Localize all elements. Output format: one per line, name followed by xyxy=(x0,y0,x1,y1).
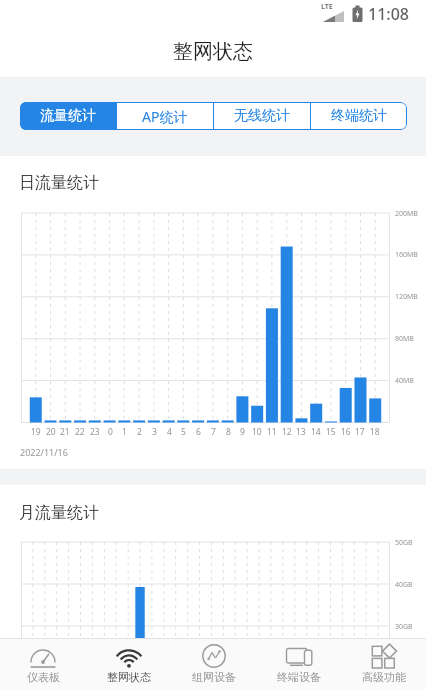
staticText: 50GB xyxy=(395,538,413,548)
staticText: 整网状态 xyxy=(107,670,151,684)
button[interactable]: 终端统计 xyxy=(311,102,407,130)
staticText: 9 xyxy=(240,426,245,438)
staticText: 11 xyxy=(267,426,277,438)
staticText: 40MB xyxy=(395,376,414,386)
staticText: 23 xyxy=(90,426,100,438)
staticText: 8 xyxy=(226,426,231,438)
staticText: 22 xyxy=(75,426,85,438)
staticText: 18 xyxy=(370,426,380,438)
staticText: AP统计 xyxy=(142,107,188,126)
staticText: 终端统计 xyxy=(331,107,387,125)
staticText: 19 xyxy=(31,426,41,438)
staticText: 16 xyxy=(341,426,351,438)
staticText: 高级功能 xyxy=(362,670,406,684)
button[interactable]: 终端设备 xyxy=(256,639,341,690)
staticText: 17 xyxy=(355,426,365,438)
staticText: 11:08 xyxy=(368,3,409,25)
staticText: 21 xyxy=(60,426,70,438)
staticText: 4 xyxy=(167,426,172,438)
staticText: 3 xyxy=(152,426,157,438)
staticText: 120MB xyxy=(395,292,418,302)
staticText: 月流量统计 xyxy=(19,503,99,523)
staticText: 12 xyxy=(282,426,292,438)
staticText: 14 xyxy=(311,426,321,438)
staticText: 1 xyxy=(122,426,127,438)
staticText: 2022/11/16 xyxy=(20,446,68,458)
staticText: 整网状态 xyxy=(173,39,253,64)
staticText: 6 xyxy=(196,426,201,438)
staticText: 7 xyxy=(211,426,216,438)
button[interactable]: 组网设备 xyxy=(171,639,256,690)
staticText: 160MB xyxy=(395,250,418,260)
staticText: 5 xyxy=(181,426,186,438)
staticText: 0 xyxy=(108,426,113,438)
button[interactable]: 流量统计 xyxy=(20,102,116,130)
staticText: 15 xyxy=(326,426,336,438)
staticText: 日流量统计 xyxy=(19,173,99,193)
staticText: 10 xyxy=(252,426,262,438)
button[interactable]: 整网状态 xyxy=(86,639,171,690)
staticText: 流量统计 xyxy=(40,107,96,125)
staticText: 仪表板 xyxy=(27,670,60,684)
staticText: 13 xyxy=(296,426,306,438)
staticText: 80MB xyxy=(395,334,414,344)
staticText: LTE xyxy=(321,2,333,12)
staticText: 20 xyxy=(46,426,56,438)
staticText: 组网设备 xyxy=(192,670,236,684)
staticText: 40GB xyxy=(395,580,413,590)
staticText: 终端设备 xyxy=(277,670,321,684)
button[interactable]: AP统计 xyxy=(117,102,213,130)
staticText: 2 xyxy=(137,426,142,438)
button[interactable]: 高级功能 xyxy=(341,639,426,690)
staticText: 30GB xyxy=(395,622,413,632)
staticText: 无线统计 xyxy=(234,107,290,125)
button[interactable]: 无线统计 xyxy=(214,102,310,130)
staticText: 200MB xyxy=(395,209,418,219)
button[interactable]: 仪表板 xyxy=(0,639,86,690)
